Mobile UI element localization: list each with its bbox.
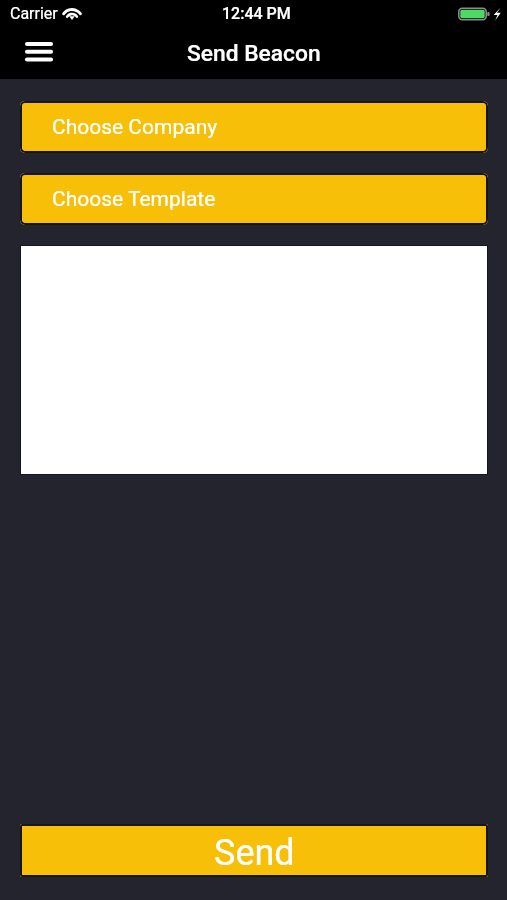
- staticText: Send Beacon: [187, 40, 321, 67]
- button[interactable]: Choose Template: [20, 173, 488, 225]
- staticText: Choose Template: [52, 187, 216, 212]
- staticText: Choose Company: [52, 115, 218, 140]
- staticText: Send: [214, 832, 295, 874]
- button[interactable]: Choose Company: [20, 101, 488, 153]
- button[interactable]: Menu: [14, 33, 64, 71]
- staticText: 12:44 PM: [222, 4, 291, 23]
- button[interactable]: Message body: [20, 245, 488, 475]
- staticText: Carrier: [10, 4, 58, 23]
- button[interactable]: Send: [20, 824, 488, 877]
